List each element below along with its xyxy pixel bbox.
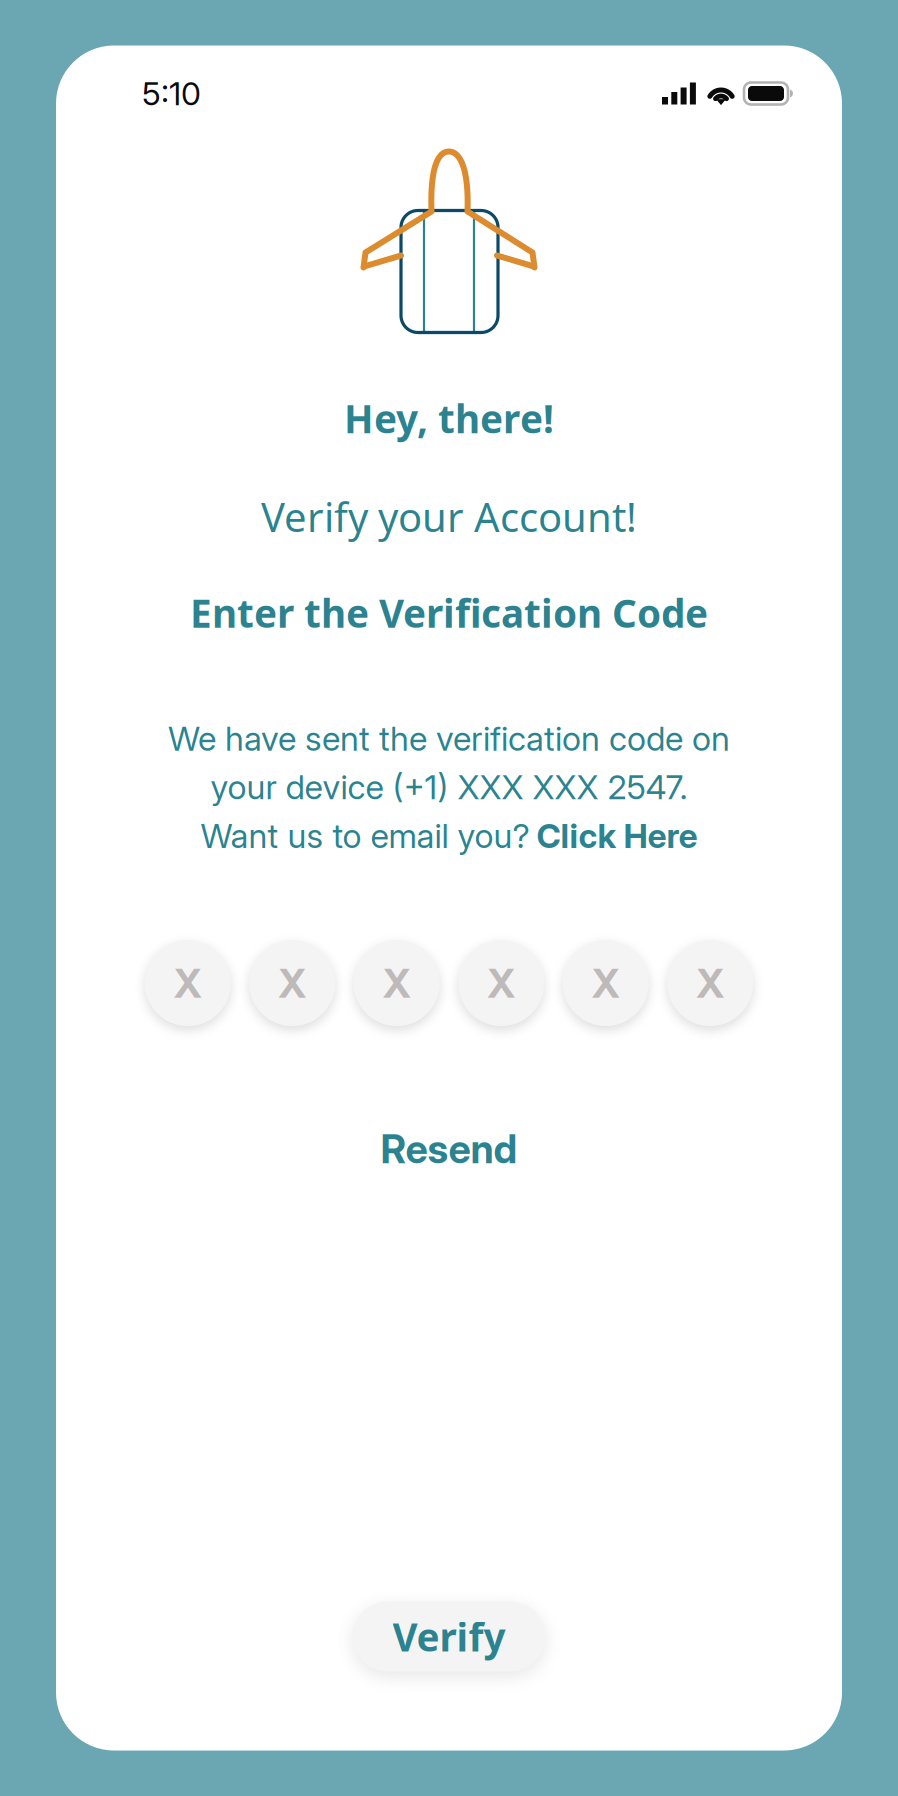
staticText: Verify <box>392 1611 505 1662</box>
button[interactable]: Resend <box>380 1125 517 1173</box>
staticText: Hey, there! <box>344 392 554 444</box>
button[interactable]: Verification code digit <box>667 940 753 1026</box>
staticText: X <box>383 959 411 1007</box>
staticText: X <box>278 959 306 1007</box>
button[interactable]: Verification code digit <box>354 940 440 1026</box>
staticText: Verify your Account! <box>261 490 637 543</box>
staticText: Resend <box>380 1125 517 1173</box>
button[interactable]: Verification code digit <box>458 940 544 1026</box>
staticText: X <box>696 959 724 1007</box>
staticText: X <box>487 959 515 1007</box>
button[interactable]: Click Here <box>536 816 697 856</box>
staticText: We have sent the verification code on <box>168 718 730 759</box>
button[interactable]: Verify <box>352 1601 545 1671</box>
button[interactable]: Verification code digit <box>145 940 231 1026</box>
staticText: 5:10 <box>142 74 201 113</box>
button[interactable]: Verification code digit <box>563 940 649 1026</box>
staticText: Click Here <box>536 816 697 856</box>
staticText: X <box>592 959 620 1007</box>
staticText: Want us to email you? <box>200 816 529 856</box>
button[interactable]: Verification code digit <box>249 940 335 1026</box>
staticText: X <box>174 959 202 1007</box>
staticText: your device (+1) XXX XXX 2547. <box>210 767 687 807</box>
staticText: Enter the Verification Code <box>190 587 708 638</box>
